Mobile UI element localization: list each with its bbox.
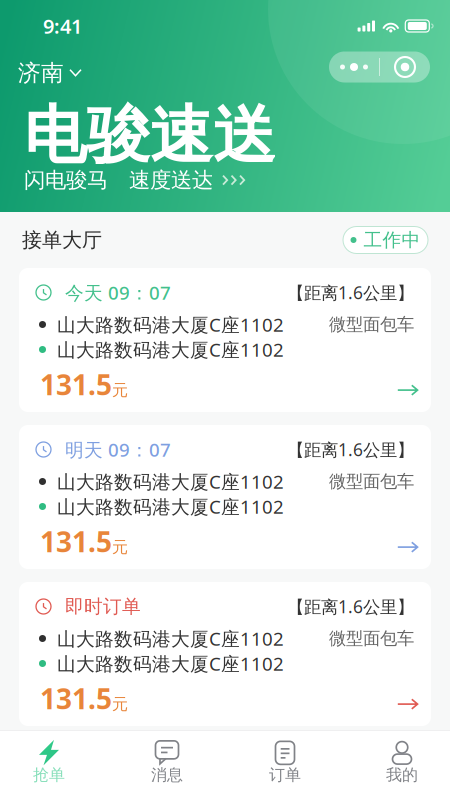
- staticText: 9:41: [43, 13, 82, 39]
- staticText: 【距离1.6公里】: [287, 438, 414, 461]
- staticText: 【距离1.6公里】: [287, 281, 414, 304]
- staticText: 闪电骏马 速度送达: [24, 167, 213, 193]
- staticText: 山大路数码港大厦C座1102: [57, 469, 284, 494]
- staticText: 山大路数码港大厦C座1102: [57, 651, 284, 676]
- button[interactable]: 抢单: [0, 731, 77, 800]
- staticText: 131.5: [40, 680, 112, 717]
- staticText: 即时订单: [65, 595, 141, 618]
- button[interactable]: 我的: [313, 731, 450, 800]
- staticText: 131.5: [40, 523, 112, 560]
- staticText: 抢单: [33, 765, 65, 785]
- staticText: 我的: [386, 765, 418, 785]
- button[interactable]: 消息: [77, 731, 195, 800]
- button[interactable]: More options: [329, 51, 379, 82]
- staticText: 元: [112, 537, 128, 557]
- button[interactable]: 订单: [195, 731, 313, 800]
- button[interactable]: 即时订单: [19, 582, 431, 726]
- button[interactable]: 明天 09：07: [19, 425, 431, 569]
- staticText: 山大路数码港大厦C座1102: [57, 626, 284, 651]
- button[interactable]: 工作中: [343, 226, 428, 253]
- staticText: 元: [112, 380, 128, 400]
- staticText: 山大路数码港大厦C座1102: [57, 494, 284, 519]
- staticText: 元: [112, 694, 128, 714]
- staticText: 【距离1.6公里】: [287, 595, 414, 618]
- staticText: 微型面包车: [329, 314, 414, 335]
- staticText: 山大路数码港大厦C座1102: [57, 337, 284, 362]
- staticText: 消息: [151, 765, 183, 785]
- staticText: 工作中: [363, 228, 420, 251]
- staticText: 山大路数码港大厦C座1102: [57, 312, 284, 337]
- staticText: 明天 09：07: [65, 437, 171, 462]
- button[interactable]: 今天 09：07: [19, 268, 431, 412]
- staticText: 131.5: [40, 366, 112, 403]
- staticText: 电骏速送: [24, 97, 276, 174]
- button[interactable]: 济南: [18, 54, 82, 92]
- staticText: 微型面包车: [329, 471, 414, 492]
- staticText: 今天 09：07: [65, 280, 171, 305]
- staticText: 订单: [269, 765, 301, 785]
- button[interactable]: Close mini program: [380, 51, 430, 82]
- staticText: 济南: [18, 59, 64, 87]
- staticText: 微型面包车: [329, 628, 414, 649]
- staticText: 接单大厅: [22, 228, 102, 252]
